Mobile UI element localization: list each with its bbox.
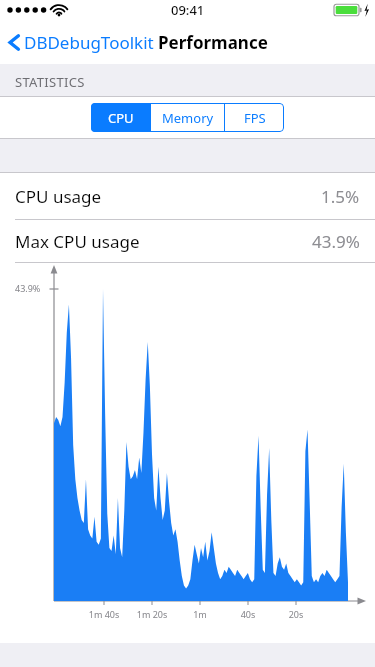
staticText: 1.5% <box>321 185 360 208</box>
staticText: STATISTICS <box>15 73 85 91</box>
staticText: 40s <box>222 608 274 620</box>
button[interactable]: Memory <box>151 103 224 132</box>
staticText: Performance <box>158 31 268 54</box>
staticText: 20s <box>270 608 322 620</box>
staticText: Memory <box>162 109 214 127</box>
button[interactable]: FPS <box>225 103 284 132</box>
staticText: Max CPU usage <box>15 230 140 253</box>
staticText: 43.9% <box>15 282 41 294</box>
staticText: CPU usage <box>15 185 102 208</box>
staticText: CPU <box>108 109 134 127</box>
staticText: 43.9% <box>312 230 360 253</box>
button[interactable]: CPU <box>91 103 150 132</box>
staticText: 1m 40s <box>78 608 130 620</box>
staticText: FPS <box>244 109 266 127</box>
button[interactable]: Max CPU usage <box>0 220 375 262</box>
button[interactable]: Back <box>0 25 160 60</box>
staticText: DBDebugToolkit <box>24 31 154 54</box>
button[interactable]: CPU usage <box>0 173 375 219</box>
staticText: 1m 20s <box>126 608 178 620</box>
other: Back <box>8 32 21 53</box>
staticText: 1m <box>174 608 226 620</box>
staticText: 09:41 <box>171 1 205 19</box>
